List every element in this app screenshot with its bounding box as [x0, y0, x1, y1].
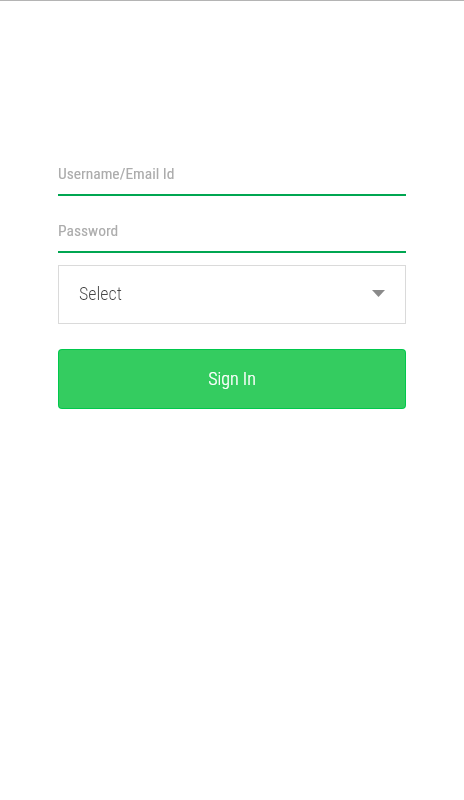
button[interactable]: Username/Email Id — [58, 160, 406, 196]
button[interactable]: Sign In — [59, 350, 405, 408]
staticText: Username/Email Id — [58, 165, 175, 183]
staticText: Sign In — [208, 368, 256, 389]
button[interactable]: Select — [58, 265, 406, 324]
staticText: Select — [79, 283, 122, 304]
button[interactable]: Password — [58, 217, 406, 253]
staticText: Password — [58, 222, 119, 240]
